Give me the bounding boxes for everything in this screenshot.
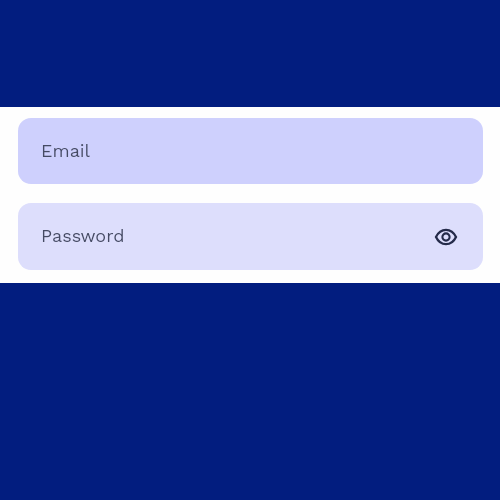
button[interactable]: Password [18, 203, 483, 270]
button[interactable]: Email [18, 118, 483, 184]
staticText: Email [41, 140, 91, 161]
staticText: Password [41, 225, 125, 246]
button[interactable] [434, 225, 458, 249]
